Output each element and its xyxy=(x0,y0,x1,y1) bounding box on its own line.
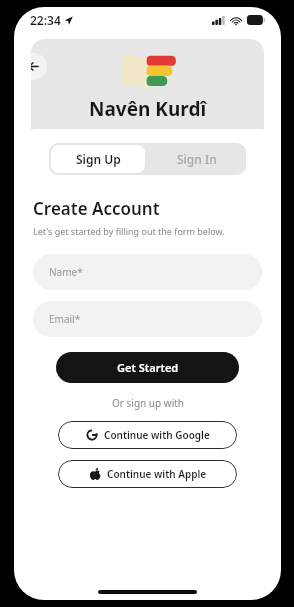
staticText: Get Started xyxy=(117,360,179,375)
button[interactable]: Get Started xyxy=(56,352,239,383)
button[interactable]: Back xyxy=(31,53,47,80)
button[interactable]: Name* xyxy=(33,254,262,290)
staticText: Let's get started by filling out the for… xyxy=(33,225,225,237)
button[interactable]: Continue with Apple xyxy=(58,460,237,488)
staticText: 22:34 xyxy=(30,12,61,28)
staticText: Sign Up xyxy=(76,151,121,167)
staticText: Or sign up with xyxy=(112,396,184,410)
staticText: Continue with Apple xyxy=(107,467,207,481)
button[interactable]: Continue with Google xyxy=(58,421,237,449)
staticText: Name* xyxy=(49,265,83,279)
staticText: Create Account xyxy=(33,197,160,220)
button[interactable]: Sign In xyxy=(147,143,246,175)
staticText: Continue with Google xyxy=(104,428,210,442)
button[interactable]: Sign Up xyxy=(51,145,145,173)
staticText: Email* xyxy=(49,312,81,326)
staticText: Sign In xyxy=(177,151,217,167)
staticText: Navên Kurdî xyxy=(89,96,207,122)
button[interactable]: Email* xyxy=(33,301,262,337)
